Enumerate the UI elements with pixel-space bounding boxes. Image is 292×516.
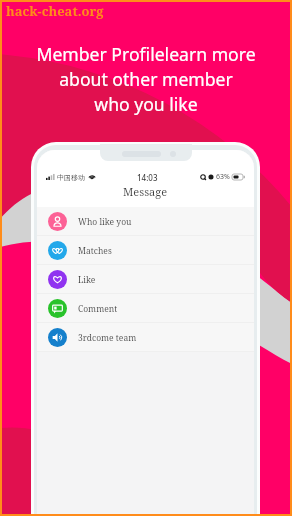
button[interactable]: 3rdcome team [37, 323, 254, 352]
staticText: 3rdcome team [78, 332, 137, 344]
button[interactable]: Comment [37, 294, 254, 323]
staticText: Matches [78, 245, 112, 257]
button[interactable]: Like [37, 265, 254, 294]
staticText: hack-cheat.org [6, 2, 104, 20]
staticText: Comment [78, 303, 118, 315]
staticText: 中国移动 [57, 173, 85, 182]
staticText: Who like you [78, 216, 132, 228]
button[interactable]: Matches [37, 236, 254, 265]
staticText: Member Profilelearn more about other mem… [0, 42, 292, 116]
button[interactable]: Who like you [37, 207, 254, 236]
staticText: 63% [216, 172, 230, 182]
staticText: Like [78, 274, 96, 286]
staticText: 14:03 [137, 172, 158, 183]
staticText: Message [123, 184, 168, 199]
